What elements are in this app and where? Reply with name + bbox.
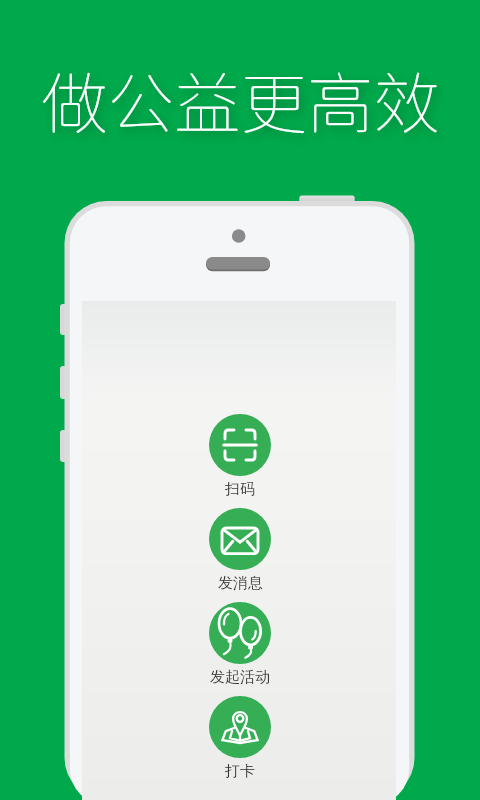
button[interactable]: Send message (209, 508, 271, 602)
staticText: 做公益更高效 (41, 63, 440, 141)
staticText: 发起活动 (210, 668, 270, 687)
button[interactable]: Check in (209, 696, 271, 790)
button[interactable]: Start an activity (209, 602, 271, 696)
staticText: 发消息 (218, 574, 263, 593)
button[interactable]: Scan QR code (209, 414, 271, 508)
staticText: 扫码 (225, 480, 255, 499)
staticText: 打卡 (225, 762, 255, 781)
